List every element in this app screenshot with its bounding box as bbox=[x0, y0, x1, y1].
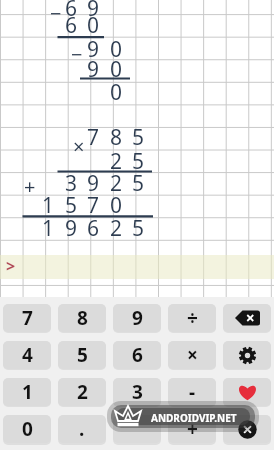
staticText: 4 bbox=[22, 342, 33, 368]
staticText: 0 bbox=[110, 78, 123, 106]
staticText: 0 bbox=[110, 35, 123, 63]
button[interactable]: × bbox=[168, 341, 216, 369]
button[interactable] bbox=[223, 341, 271, 369]
staticText: 5 bbox=[77, 342, 88, 368]
staticText: . bbox=[79, 416, 85, 442]
staticText: 0 bbox=[110, 191, 123, 219]
button[interactable]: ÷ bbox=[168, 304, 216, 332]
staticText: 6 bbox=[65, 0, 78, 22]
staticText: 8 bbox=[77, 305, 88, 331]
button[interactable]: 4 bbox=[3, 341, 51, 369]
staticText: − bbox=[50, 0, 62, 27]
staticText: 2 bbox=[77, 379, 88, 405]
button[interactable]: 9 bbox=[113, 304, 161, 332]
button[interactable]: 5 bbox=[58, 341, 106, 369]
staticText: 9 bbox=[87, 35, 100, 63]
staticText: × bbox=[187, 342, 198, 368]
staticText: ANDROIDVIP.NET bbox=[151, 411, 237, 425]
button[interactable]: 6 bbox=[113, 341, 161, 369]
button[interactable] bbox=[223, 415, 271, 443]
staticText: 0 bbox=[87, 11, 100, 39]
staticText: 8 bbox=[110, 123, 123, 151]
staticText: > bbox=[6, 255, 16, 277]
staticText: 1 bbox=[42, 214, 55, 242]
staticText: 6 bbox=[132, 342, 143, 368]
button[interactable]: - bbox=[168, 378, 216, 406]
button[interactable]: + bbox=[168, 415, 216, 443]
staticText: 7 bbox=[87, 191, 100, 219]
button[interactable]: > bbox=[0, 255, 274, 279]
staticText: 5 bbox=[132, 169, 145, 197]
button[interactable] bbox=[113, 415, 161, 443]
staticText: ÷ bbox=[187, 305, 198, 331]
staticText: 2 bbox=[110, 147, 123, 175]
button[interactable]: 7 bbox=[3, 304, 51, 332]
staticText: 5 bbox=[132, 123, 145, 151]
staticText: 9 bbox=[65, 214, 78, 242]
staticText: 5 bbox=[65, 191, 78, 219]
staticText: 3 bbox=[65, 169, 78, 197]
button[interactable]: 0 bbox=[3, 415, 51, 443]
staticText: 9 bbox=[132, 305, 143, 331]
staticText: 1 bbox=[22, 379, 33, 405]
staticText: + bbox=[187, 416, 198, 442]
button[interactable]: 2 bbox=[58, 378, 106, 406]
staticText: 0 bbox=[22, 416, 33, 442]
staticText: 9 bbox=[87, 0, 100, 22]
button[interactable] bbox=[223, 378, 271, 406]
button[interactable]: 1 bbox=[3, 378, 51, 406]
staticText: 7 bbox=[87, 123, 100, 151]
staticText: 9 bbox=[87, 55, 100, 83]
staticText: 2 bbox=[110, 169, 123, 197]
staticText: − bbox=[71, 41, 83, 68]
staticText: - bbox=[189, 379, 196, 405]
button[interactable]: . bbox=[58, 415, 106, 443]
staticText: 0 bbox=[110, 55, 123, 83]
button[interactable]: 3 bbox=[113, 378, 161, 406]
button[interactable] bbox=[223, 304, 271, 332]
staticText: + bbox=[24, 173, 36, 200]
staticText: × bbox=[73, 133, 85, 160]
staticText: 2 bbox=[110, 214, 123, 242]
staticText: 9 bbox=[87, 169, 100, 197]
staticText: 6 bbox=[87, 214, 100, 242]
staticText: 5 bbox=[132, 147, 145, 175]
staticText: 5 bbox=[132, 214, 145, 242]
staticText: 1 bbox=[42, 191, 55, 219]
staticText: 7 bbox=[22, 305, 33, 331]
button[interactable]: 8 bbox=[58, 304, 106, 332]
staticText: 6 bbox=[65, 11, 78, 39]
staticText: 3 bbox=[132, 379, 143, 405]
